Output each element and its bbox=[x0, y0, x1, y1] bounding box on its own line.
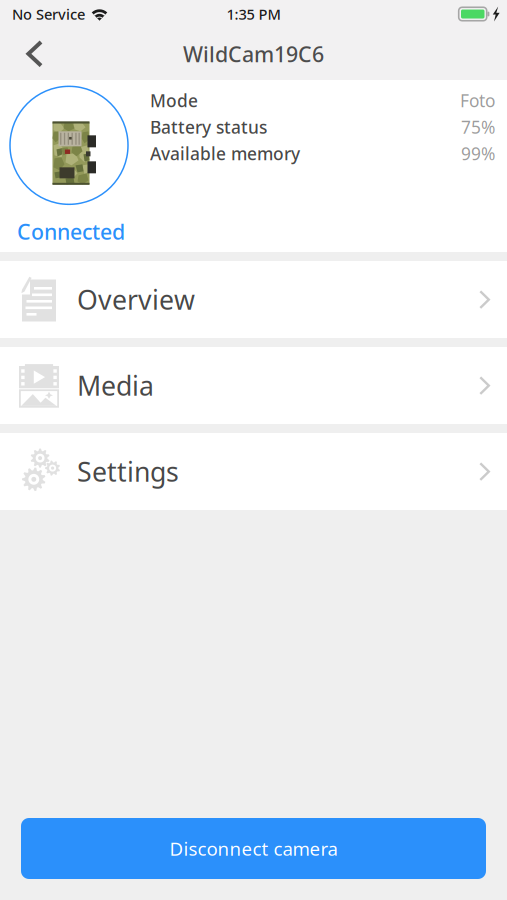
staticText: 75% bbox=[461, 116, 495, 139]
staticText: Overview bbox=[77, 282, 195, 317]
button[interactable]: Back bbox=[0, 28, 61, 80]
staticText: Disconnect camera bbox=[169, 836, 337, 861]
staticText: WildCam19C6 bbox=[183, 40, 324, 68]
staticText: 1:35 PM bbox=[226, 4, 280, 24]
button[interactable]: Settings bbox=[0, 433, 507, 510]
staticText: Mode bbox=[150, 89, 198, 112]
staticText: Media bbox=[77, 368, 154, 403]
staticText: Available memory bbox=[150, 142, 300, 165]
button[interactable]: Media bbox=[0, 347, 507, 424]
button[interactable]: Disconnect camera bbox=[21, 818, 486, 879]
staticText: Battery status bbox=[150, 116, 267, 139]
staticText: No Service bbox=[12, 4, 85, 24]
staticText: 99% bbox=[461, 142, 495, 165]
staticText: Connected bbox=[17, 217, 125, 246]
button[interactable]: Overview bbox=[0, 261, 507, 338]
staticText: Foto bbox=[460, 89, 495, 112]
staticText: Settings bbox=[77, 454, 179, 489]
